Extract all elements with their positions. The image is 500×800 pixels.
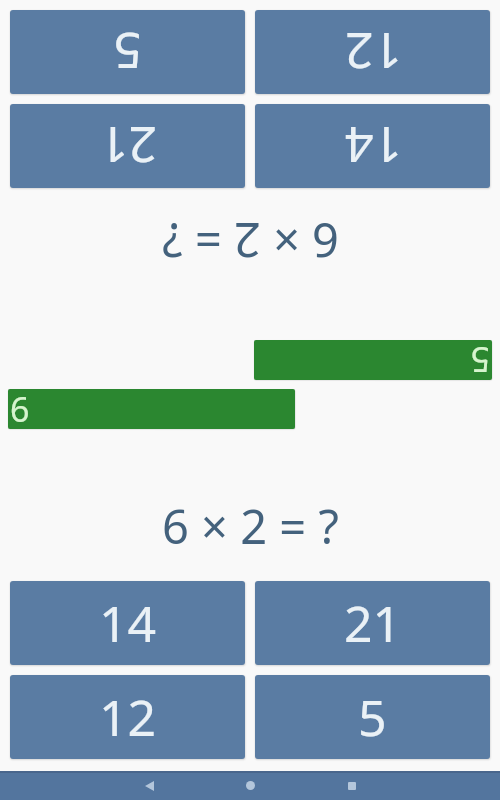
button[interactable]: 5 (255, 675, 490, 759)
staticText: 14 (344, 112, 402, 180)
button[interactable]: 12 (255, 10, 490, 94)
button[interactable]: 14 (10, 581, 245, 665)
staticText: 12 (99, 683, 157, 751)
button[interactable]: 21 (255, 581, 490, 665)
staticText: 21 (344, 589, 402, 657)
button[interactable]: 21 (10, 104, 245, 188)
button[interactable]: 5 (10, 10, 245, 94)
staticText: 12 (344, 18, 402, 86)
button[interactable]: Recent apps (301, 771, 402, 800)
staticText: 21 (99, 112, 157, 180)
staticText: 6 × 2 = ? (162, 209, 339, 273)
button[interactable]: 14 (255, 104, 490, 188)
staticText: 14 (99, 589, 157, 657)
staticText: 6 × 2 = ? (162, 494, 339, 558)
staticText: 5 (358, 683, 387, 751)
button[interactable]: Home (200, 771, 301, 800)
button[interactable]: Back (99, 771, 200, 800)
staticText: 6 (10, 389, 30, 426)
staticText: 5 (470, 343, 490, 380)
staticText: 5 (113, 18, 142, 86)
button[interactable]: 12 (10, 675, 245, 759)
